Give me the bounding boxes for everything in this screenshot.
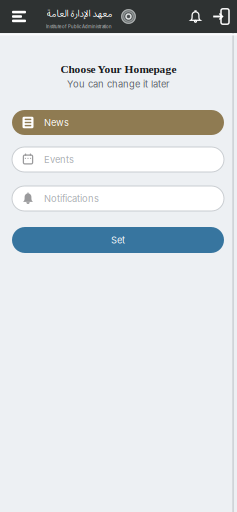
staticText: Set (111, 234, 125, 246)
button[interactable]: Notifications (12, 186, 224, 211)
staticText: Choose Your Homepage (60, 63, 176, 75)
button[interactable]: Sign in (210, 0, 228, 33)
button[interactable]: Notifications (187, 0, 204, 33)
staticText: Notifications (44, 193, 99, 204)
staticText: You can change it later (67, 78, 170, 90)
staticText: معهد الإدارة العامة (46, 4, 112, 23)
button[interactable]: Events (12, 147, 224, 172)
staticText: News (44, 117, 69, 128)
staticText: Institute of Public Administration (46, 24, 112, 29)
button[interactable]: Set (12, 227, 224, 253)
button[interactable]: News (12, 110, 224, 135)
staticText: Events (44, 154, 74, 165)
button[interactable]: Menu (6, 0, 32, 33)
